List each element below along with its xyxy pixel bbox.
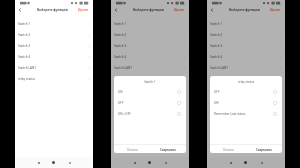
staticText: ON [118,90,123,94]
staticText: Switch 3 [18,44,31,48]
staticText: Switch 3 [114,44,127,48]
button[interactable]: Switch 1 [111,18,189,29]
button[interactable]: Отмена [114,145,150,153]
staticText: Switch 1 [114,22,127,26]
button[interactable]: Switch 4 [207,51,285,62]
staticText: Switch 3 [210,44,223,48]
button[interactable]: Switch 1 [15,18,93,29]
staticText: Switch 2 [114,33,127,37]
staticText: Switch 4 [210,55,223,59]
button[interactable]: Switch LAN1 [207,62,285,73]
staticText: Сохранить [160,148,176,152]
staticText: Выберите функцию [37,8,68,12]
button[interactable]: Далее [78,7,89,12]
button[interactable]: Remember Last status [210,108,282,119]
staticText: Сохранить [256,148,272,152]
staticText: Отмена [223,148,234,152]
staticText: Switch 2 [18,33,31,37]
staticText: Switch 1 [18,22,31,26]
button[interactable]: Home [145,158,154,167]
staticText: Switch 2 [210,33,223,37]
button[interactable]: relay status [207,73,285,84]
staticText: Далее [78,7,89,12]
button[interactable]: OFF [114,97,186,108]
button[interactable]: Back [34,158,43,167]
button[interactable]: Back [16,6,24,14]
button[interactable]: Back [226,158,235,167]
staticText: Remember Last status [214,112,246,116]
button[interactable]: Switch 4 [15,51,93,62]
button[interactable]: Отмена [210,145,246,153]
button[interactable]: Switch 3 [207,40,285,51]
staticText: Switch LAN1 [18,66,37,70]
staticText: Отмена [127,148,138,152]
button[interactable]: ON [114,86,186,97]
button[interactable]: Switch 3 [15,40,93,51]
staticText: OFF [118,101,124,105]
button[interactable]: relay status [111,73,189,84]
button[interactable]: Switch 4 [111,51,189,62]
button[interactable]: Сохранить [246,145,282,153]
staticText: Switch 4 [114,55,127,59]
staticText: Выберите функцию [133,8,164,12]
staticText: relay status [210,80,282,84]
button[interactable]: Recents [65,158,74,167]
staticText: ON [214,101,219,105]
staticText: Switch 1 [114,80,186,84]
staticText: relay status [18,77,35,81]
button[interactable]: Switch 2 [207,29,285,40]
staticText: Switch LAN1 [114,66,133,70]
button[interactable]: ON->OFF [114,108,186,119]
button[interactable]: Back [208,6,216,14]
button[interactable]: Recents [161,158,170,167]
staticText: ON->OFF [118,112,131,116]
button[interactable]: Switch LAN1 [15,62,93,73]
button[interactable]: OFF [210,86,282,97]
button[interactable]: Back [112,6,120,14]
button[interactable]: Switch 2 [111,29,189,40]
button[interactable]: Back [130,158,139,167]
button[interactable]: Switch 2 [15,29,93,40]
button[interactable]: Switch 3 [111,40,189,51]
staticText: Далее [270,7,281,12]
button[interactable]: Switch 1 [207,18,285,29]
staticText: Switch LAN1 [210,66,229,70]
staticText: Switch 4 [18,55,31,59]
button[interactable]: Home [241,158,250,167]
button[interactable]: relay status [15,73,93,84]
staticText: Выберите функцию [229,8,260,12]
button[interactable]: Далее [270,7,281,12]
staticText: Далее [174,7,185,12]
button[interactable]: Сохранить [150,145,186,153]
button[interactable]: Далее [174,7,185,12]
button[interactable]: Home [49,158,58,167]
button[interactable]: Recents [257,158,266,167]
staticText: Switch 1 [210,22,223,26]
button[interactable]: ON [210,97,282,108]
staticText: OFF [214,90,220,94]
button[interactable]: Switch LAN1 [111,62,189,73]
